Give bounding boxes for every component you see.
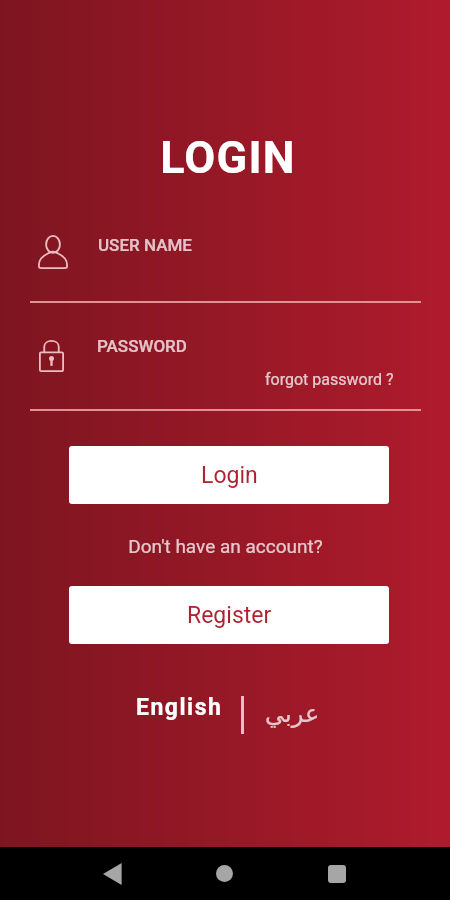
button[interactable]: Login <box>69 446 389 504</box>
staticText: PASSWORD <box>97 336 187 356</box>
staticText: English <box>136 694 223 721</box>
staticText: Login <box>201 462 258 489</box>
button[interactable]: Don't have an account? <box>128 535 323 557</box>
button[interactable]: forgot password ? <box>265 370 394 389</box>
button[interactable]: Recent apps <box>315 847 359 900</box>
button[interactable]: Home <box>202 847 246 900</box>
staticText: LOGIN <box>3 131 450 184</box>
button[interactable]: USER NAME <box>38 220 420 286</box>
button[interactable]: Register <box>69 586 389 644</box>
button[interactable]: Back <box>90 847 134 900</box>
button[interactable]: عربي <box>265 700 320 728</box>
staticText: Register <box>187 602 272 629</box>
button[interactable]: English <box>136 694 223 721</box>
staticText: USER NAME <box>98 235 192 255</box>
button[interactable]: PASSWORD <box>39 330 420 380</box>
staticText: عربي <box>265 700 320 728</box>
